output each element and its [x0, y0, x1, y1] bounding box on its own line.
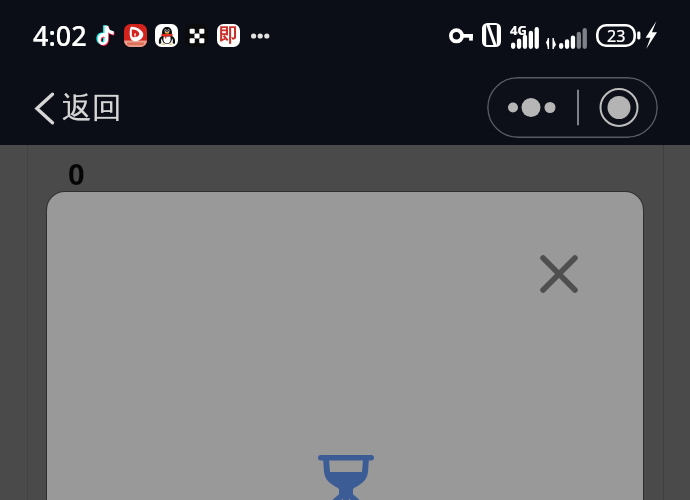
staticText: 即 — [219, 24, 238, 47]
staticText: 4:02 — [33, 17, 87, 54]
staticText: 0 — [68, 154, 85, 193]
staticText: 4G — [510, 21, 527, 39]
button[interactable]: Back — [26, 81, 130, 135]
staticText: 返回 — [62, 89, 122, 127]
button[interactable]: More — [487, 77, 573, 138]
button[interactable]: Close — [540, 255, 578, 293]
staticText: 23 — [607, 25, 626, 47]
button[interactable]: Close mini program — [573, 77, 658, 138]
